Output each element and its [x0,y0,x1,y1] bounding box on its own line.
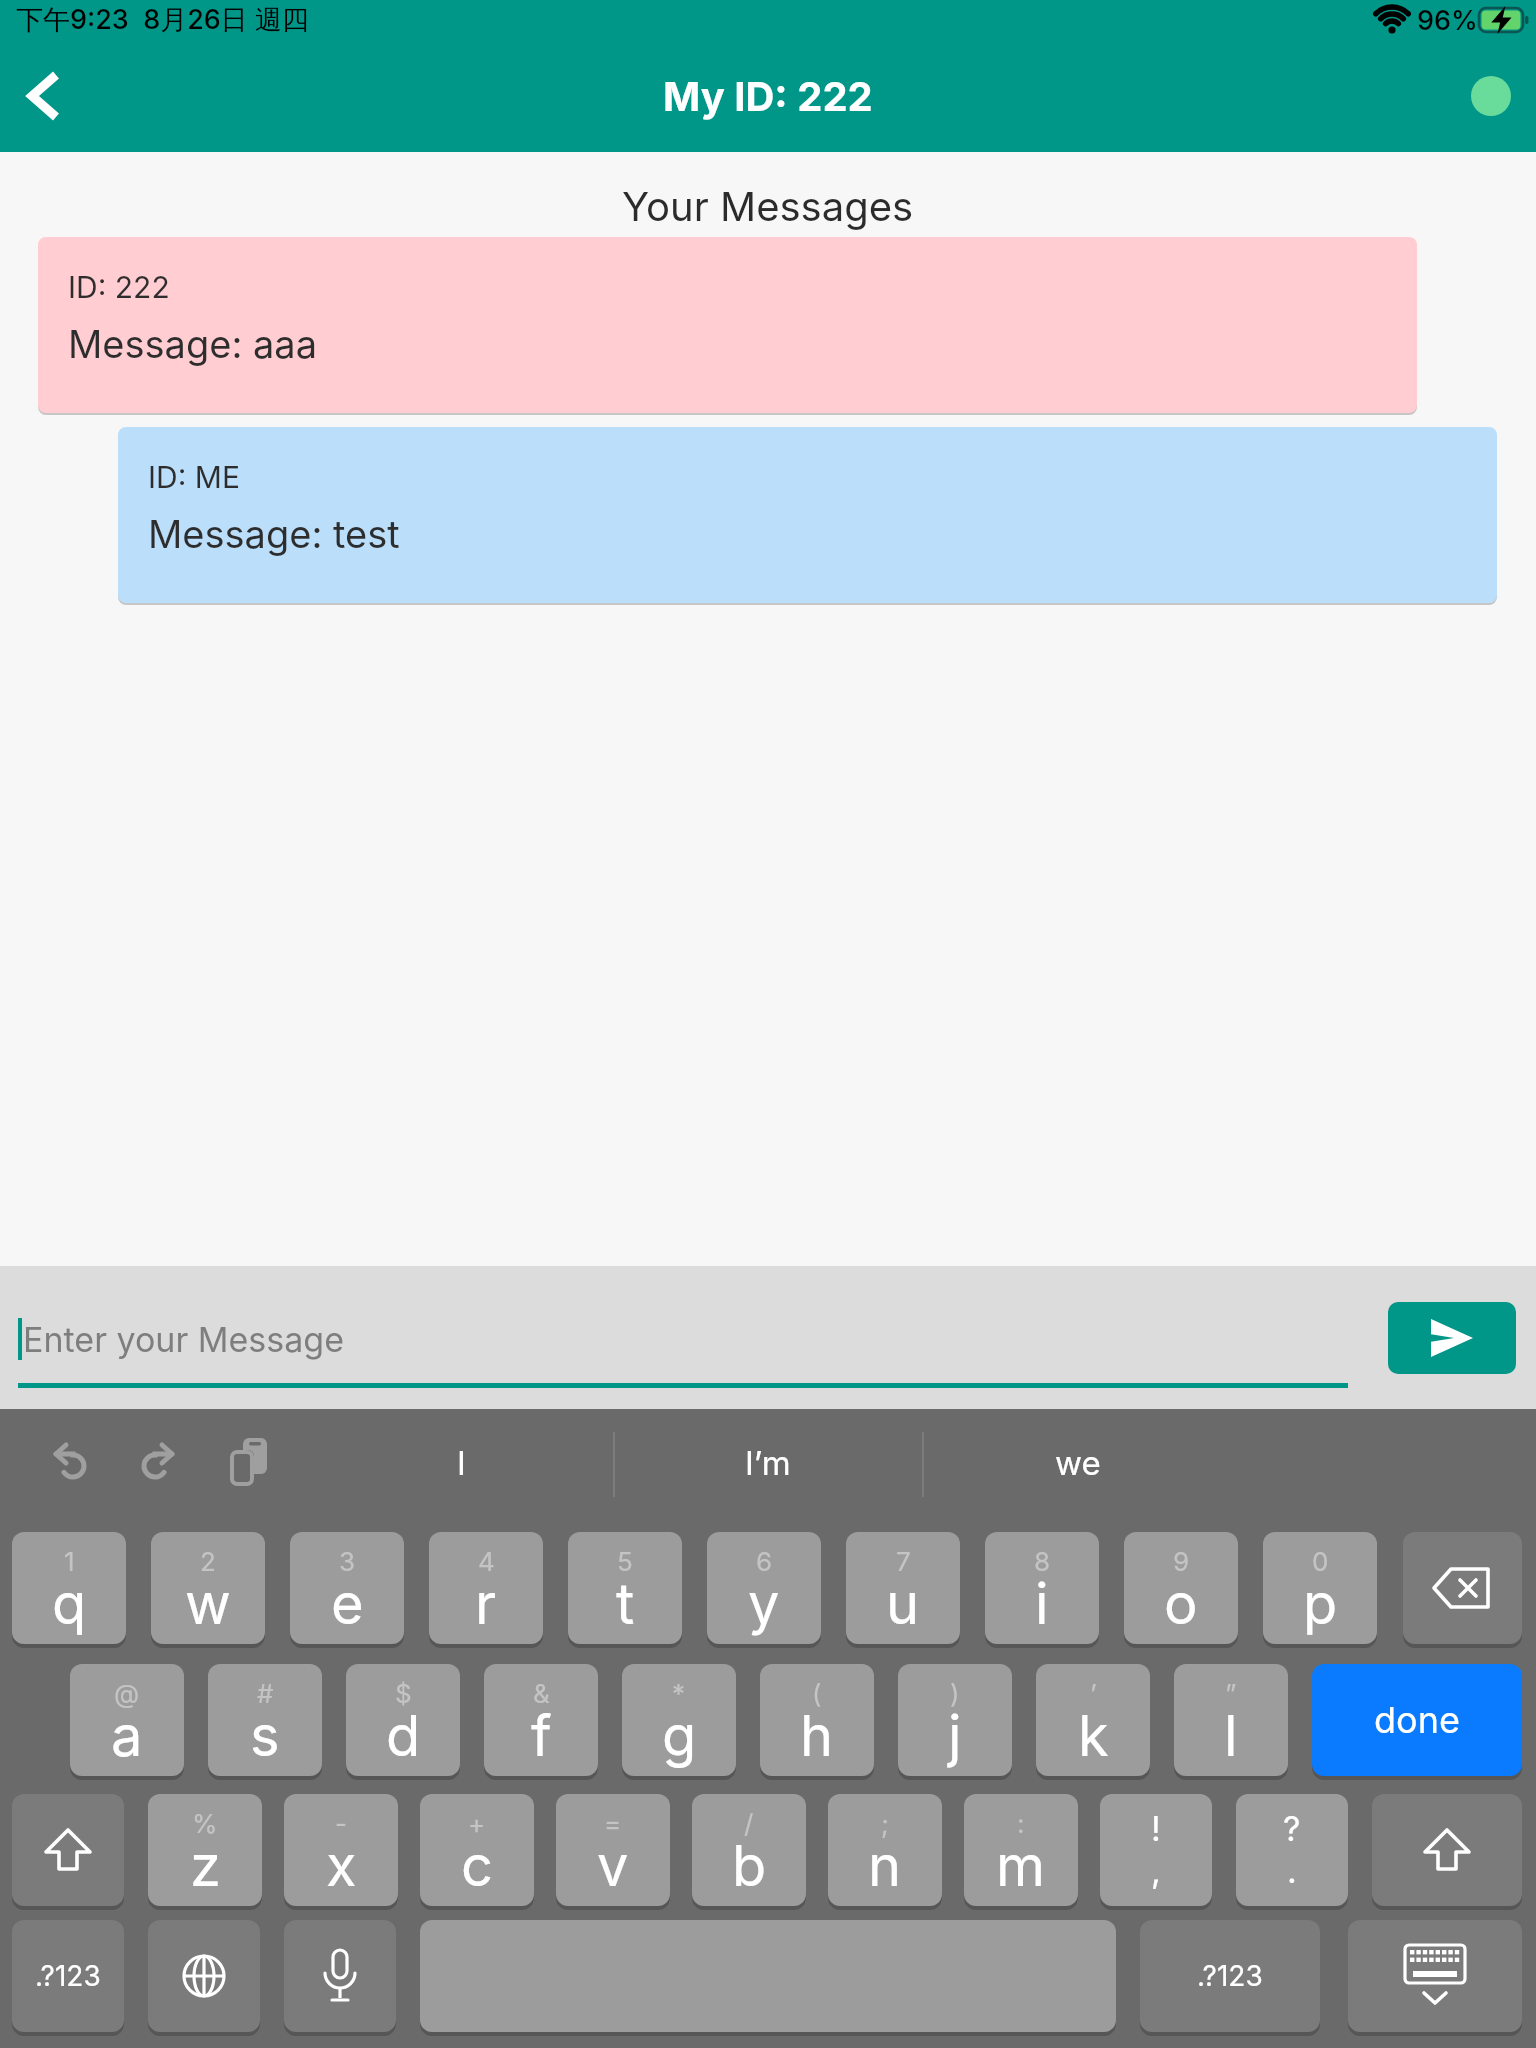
staticText: g [662,1702,697,1770]
staticText: 4 [478,1546,495,1577]
staticText: / [744,1808,754,1839]
button[interactable] [1348,1920,1522,2032]
staticText: c [461,1832,493,1900]
button[interactable]: / [692,1794,806,1906]
staticText: y [748,1570,780,1638]
staticText: 6 [756,1546,773,1577]
button[interactable] [148,1920,260,2032]
staticText: - [335,1808,347,1839]
button[interactable]: : [964,1794,1078,1906]
button[interactable]: # [208,1664,322,1776]
button[interactable]: ID: 222 [38,237,1417,413]
button[interactable]: 0 [1263,1532,1377,1644]
button[interactable]: ) [898,1664,1012,1776]
staticText: k [1078,1702,1109,1770]
staticText: # [257,1678,274,1709]
button[interactable]: we [924,1430,1232,1496]
button[interactable]: $ [346,1664,460,1776]
button[interactable]: ! [1100,1794,1212,1906]
button[interactable]: 1 [12,1532,126,1644]
button[interactable]: 5 [568,1532,682,1644]
staticText: & [533,1678,550,1709]
staticText: = [604,1808,622,1839]
button[interactable]: done [1312,1664,1522,1776]
staticText: ID: 222 [68,269,170,305]
staticText: . [1287,1850,1297,1891]
staticText: w [185,1570,231,1638]
button[interactable]: 4 [429,1532,543,1644]
staticText: e [331,1570,364,1638]
staticText: u [886,1570,920,1638]
button[interactable]: .?123 [12,1920,124,2032]
button[interactable]: * [622,1664,736,1776]
staticText: t [616,1570,635,1638]
button[interactable]: ; [828,1794,942,1906]
button[interactable]: .?123 [1140,1920,1320,2032]
staticText: I [457,1443,466,1483]
button[interactable] [1471,76,1511,116]
button[interactable] [284,1920,396,2032]
button[interactable]: 2 [151,1532,265,1644]
button[interactable]: = [556,1794,670,1906]
button[interactable]: % [148,1794,262,1906]
staticText: 3 [339,1546,356,1577]
button[interactable]: ID: ME [118,427,1497,603]
staticText: % [192,1808,218,1839]
staticText: Enter your Message [23,1319,344,1360]
staticText: ; [881,1808,889,1839]
staticText: 8 [1034,1546,1051,1577]
staticText: z [190,1832,221,1900]
staticText: Message: test [148,511,400,557]
button[interactable] [1372,1794,1522,1906]
button[interactable] [1403,1532,1522,1644]
staticText: n [868,1832,902,1900]
button[interactable]: 8 [985,1532,1099,1644]
staticText: b [732,1832,767,1900]
staticText: done [1374,1698,1460,1742]
staticText: * [672,1678,686,1709]
staticText: j [948,1702,962,1770]
button[interactable]: - [284,1794,398,1906]
staticText: d [386,1702,421,1770]
button[interactable]: I’m [615,1430,920,1496]
staticText: we [1055,1443,1101,1483]
button[interactable]: 6 [707,1532,821,1644]
staticText: 7 [896,1546,911,1577]
staticText: s [250,1702,280,1770]
button[interactable]: ” [1174,1664,1288,1776]
staticText: a [111,1702,143,1770]
staticText: 9 [1173,1546,1190,1577]
button[interactable]: 9 [1124,1532,1238,1644]
staticText: ” [1225,1678,1237,1709]
staticText: 96% [1417,4,1478,37]
staticText: x [326,1832,357,1900]
staticText: ’ [1090,1678,1097,1709]
button[interactable] [16,64,80,128]
button[interactable]: 3 [290,1532,404,1644]
button[interactable]: & [484,1664,598,1776]
staticText: p [1303,1570,1338,1638]
staticText: o [1164,1570,1198,1638]
staticText: l [1224,1702,1238,1770]
button[interactable]: ( [760,1664,874,1776]
button[interactable]: I [310,1430,613,1496]
button[interactable]: ? [1236,1794,1348,1906]
staticText: 2 [200,1546,216,1577]
staticText: , [1151,1850,1161,1891]
button[interactable]: @ [70,1664,184,1776]
staticText: i [1035,1570,1049,1638]
button[interactable] [1388,1302,1516,1374]
button[interactable]: Enter your Message [18,1290,1348,1388]
button[interactable]: 7 [846,1532,960,1644]
button[interactable]: ’ [1036,1664,1150,1776]
staticText: 0 [1312,1546,1329,1577]
staticText: + [468,1808,486,1839]
staticText: @ [114,1678,140,1709]
staticText: My ID: 222 [663,72,873,120]
button[interactable] [12,1794,124,1906]
staticText: ( [812,1678,822,1709]
button[interactable]: + [420,1794,534,1906]
staticText: 下午9:23 8月26日 週四 [16,3,309,37]
staticText: r [475,1570,497,1638]
